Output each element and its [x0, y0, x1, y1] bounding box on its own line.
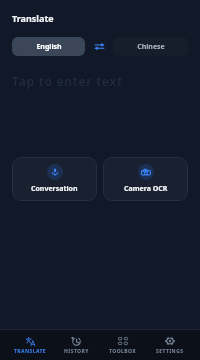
button[interactable]: Conversation	[12, 157, 97, 201]
button[interactable]: TOOLBOX	[99, 336, 146, 355]
staticText: HISTORY	[64, 348, 89, 355]
button[interactable]: Swap languages	[85, 37, 113, 56]
button[interactable]: HISTORY	[53, 336, 99, 355]
button[interactable]: Camera OCR	[103, 157, 188, 201]
button[interactable]: Chinese	[113, 37, 188, 56]
staticText: Translate	[12, 12, 54, 24]
staticText: TRANSLATE	[14, 348, 47, 355]
staticText: SETTINGS	[156, 348, 184, 355]
button[interactable]: English	[12, 37, 85, 56]
staticText: English	[36, 42, 62, 52]
staticText: Conversation	[31, 184, 78, 194]
button[interactable]: SETTINGS	[146, 336, 193, 355]
staticText: TOOLBOX	[109, 348, 137, 355]
staticText: Chinese	[137, 42, 165, 52]
button[interactable]: TRANSLATE	[7, 336, 53, 355]
staticText: Camera OCR	[124, 184, 168, 194]
staticText: Tap to enter text	[12, 73, 123, 89]
